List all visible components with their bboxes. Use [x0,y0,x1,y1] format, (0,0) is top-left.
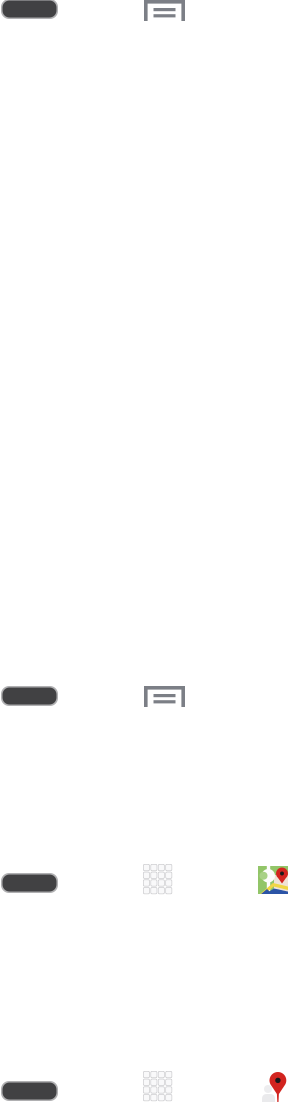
button[interactable]: Action [1,0,58,19]
button[interactable]: Open location [262,1072,288,1102]
button[interactable]: Show details panel [144,0,185,21]
button[interactable]: Show details panel [144,686,185,707]
button[interactable]: Open map [258,866,288,894]
button[interactable]: Action [1,873,58,893]
button[interactable]: Action [1,686,58,706]
button[interactable]: Show keypad [143,1071,172,1101]
button[interactable]: Show keypad [143,864,172,894]
button[interactable]: Action [1,1081,58,1101]
